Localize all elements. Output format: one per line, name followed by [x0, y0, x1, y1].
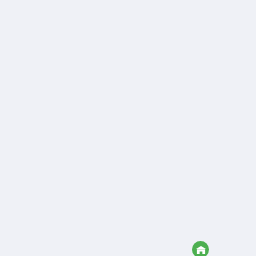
- button[interactable]: Home: [192, 241, 209, 256]
